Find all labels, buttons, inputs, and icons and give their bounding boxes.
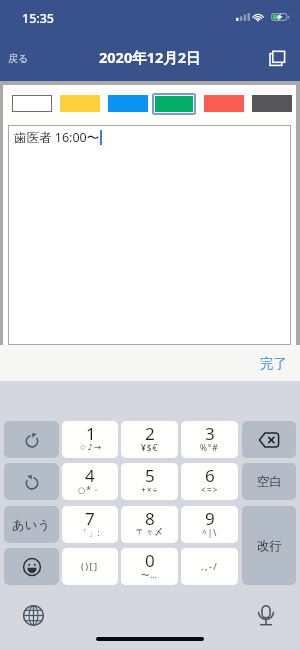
button[interactable]: 完了 [247, 350, 300, 377]
staticText: 0 [145, 549, 155, 572]
staticText: ○*・ [78, 484, 102, 495]
button[interactable]: あいう [4, 506, 59, 543]
button[interactable]: 取り消す [4, 463, 59, 500]
staticText: 15:35 [22, 10, 55, 27]
button[interactable]: 6 [181, 463, 238, 500]
button[interactable]: ()[] [62, 548, 118, 585]
staticText: 2020年12月2日 [99, 47, 201, 67]
button[interactable]: 3 [181, 421, 238, 458]
button[interactable]: 複製 [260, 42, 300, 73]
button[interactable]: 2 [121, 421, 178, 458]
button[interactable]: やり直す [4, 421, 59, 458]
staticText: 6 [205, 464, 215, 487]
staticText: 戻る [8, 52, 29, 65]
button[interactable] [12, 95, 52, 112]
staticText: 「」: [79, 527, 101, 538]
button[interactable]: 4 [62, 463, 118, 500]
staticText: ^|\ [202, 527, 218, 538]
staticText: .,-/ [201, 560, 219, 573]
staticText: 9 [205, 507, 215, 530]
staticText: 歯医者 16:00〜 [14, 129, 100, 146]
button[interactable]: 5 [121, 463, 178, 500]
button[interactable]: 音声入力 [257, 604, 275, 627]
button[interactable]: 1 [62, 421, 118, 458]
button[interactable]: 言語を切り替え [23, 605, 44, 626]
button[interactable]: 絵文字 [4, 548, 59, 585]
button[interactable]: 7 [62, 506, 118, 543]
staticText: 1 [86, 422, 96, 445]
staticText: 改行 [257, 538, 282, 554]
staticText: 8 [145, 507, 155, 530]
staticText: 〒々〆 [136, 527, 164, 538]
staticText: あいう [12, 517, 51, 533]
staticText: %°# [200, 442, 219, 453]
button[interactable]: 空白 [242, 463, 296, 500]
button[interactable]: .,-/ [181, 548, 238, 585]
staticText: 2 [145, 422, 155, 445]
button[interactable]: 戻る [0, 44, 38, 71]
staticText: 完了 [260, 355, 287, 372]
staticText: 5 [145, 464, 155, 487]
staticText: 3 [205, 422, 215, 445]
button[interactable]: 歯医者 16:00〜 [8, 125, 291, 345]
staticText: +×÷ [141, 484, 159, 495]
button[interactable]: 0 [121, 548, 178, 585]
staticText: 空白 [257, 474, 282, 490]
button[interactable]: 9 [181, 506, 238, 543]
staticText: <=> [201, 484, 219, 495]
staticText: 〜… [141, 569, 158, 580]
staticText: ¥$€ [141, 442, 159, 453]
staticText: ()[] [81, 560, 99, 573]
button[interactable]: 8 [121, 506, 178, 543]
button[interactable]: 改行 [242, 506, 296, 585]
staticText: 4 [85, 464, 95, 487]
staticText: ☆♪→ [79, 442, 102, 452]
button[interactable]: 削除 [242, 421, 296, 458]
button[interactable] [152, 93, 196, 115]
staticText: 7 [85, 507, 95, 530]
